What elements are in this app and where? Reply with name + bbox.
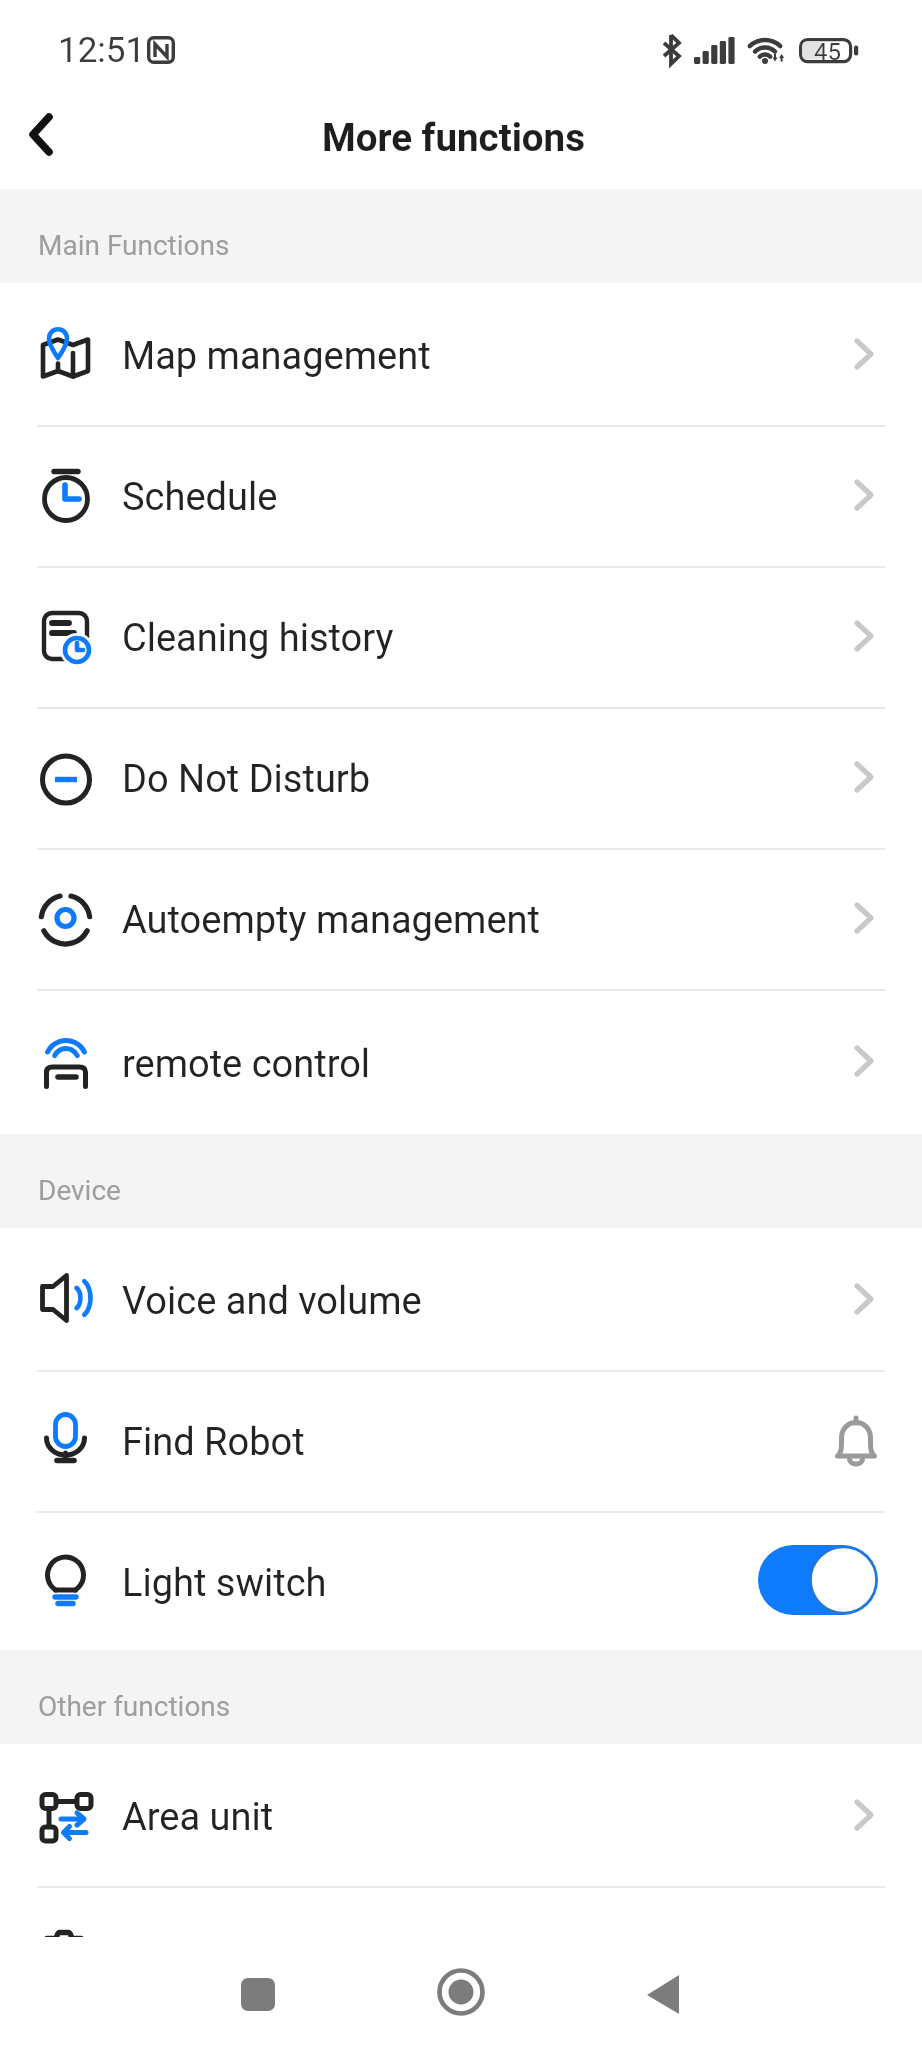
button[interactable]: Home (416, 1947, 506, 2037)
button[interactable]: Map management (0, 283, 922, 424)
button[interactable]: Locate robot alarm (816, 1409, 878, 1471)
staticText: Do Not Disturb (122, 757, 371, 802)
staticText: Find Robot (122, 1420, 305, 1465)
staticText: Light switch (122, 1561, 327, 1606)
button[interactable]: Voice and volume (0, 1228, 922, 1369)
staticText: 45 (814, 38, 841, 66)
button[interactable]: Cleaning history (0, 565, 922, 706)
staticText: Device (38, 1174, 121, 1207)
button[interactable]: Do Not Disturb (0, 706, 922, 847)
button[interactable]: Light switch (0, 1510, 922, 1650)
staticText: Map management (122, 334, 431, 379)
button[interactable]: Light switch toggle (758, 1545, 878, 1615)
staticText: Main Functions (38, 229, 230, 262)
staticText: Autoempty management (122, 898, 540, 943)
button[interactable]: Back (0, 92, 90, 182)
staticText: Area unit (122, 1795, 274, 1840)
button[interactable]: Recent apps (213, 1950, 303, 2040)
button[interactable]: Find Robot (0, 1369, 922, 1510)
button[interactable]: Autoempty management (0, 847, 922, 988)
button[interactable]: Back (618, 1949, 708, 2039)
staticText: Other functions (38, 1690, 231, 1723)
staticText: Schedule (122, 475, 278, 520)
staticText: remote control (122, 1042, 371, 1087)
staticText: 12:51 (58, 30, 146, 71)
staticText: More functions (322, 115, 585, 160)
button[interactable]: Area unit (0, 1744, 922, 1885)
staticText: Voice and volume (122, 1279, 422, 1324)
button[interactable]: remote control (0, 988, 922, 1134)
staticText: Cleaning history (122, 616, 394, 661)
button[interactable]: Schedule (0, 424, 922, 565)
